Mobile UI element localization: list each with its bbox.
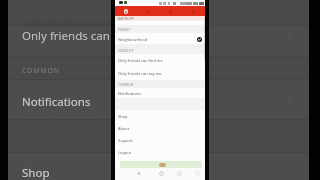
button[interactable]: People tab [159, 6, 182, 17]
staticText: COMMON [22, 66, 60, 76]
staticText: Neighbourhood [118, 37, 148, 42]
button[interactable]: Messages tab [182, 6, 205, 17]
button[interactable]: Back [135, 170, 142, 177]
button[interactable]: Only friends can find me [115, 54, 205, 67]
button[interactable]: Home tab [115, 6, 137, 17]
staticText: Only friends can find me [118, 58, 163, 63]
button[interactable]: Recents [176, 170, 183, 177]
staticText: PRIVACY [118, 28, 131, 32]
button[interactable]: Notifications [115, 88, 205, 98]
staticText: BACKUPS [118, 16, 134, 20]
staticText: Only friends can tag me [118, 71, 162, 76]
button[interactable]: Only friends can tag me [115, 67, 205, 80]
button[interactable]: Support [115, 134, 205, 146]
button[interactable]: Split screen [194, 170, 201, 177]
staticText: Shop [118, 114, 128, 119]
button[interactable]: Logout [115, 146, 205, 158]
button[interactable]: Notifications [22, 94, 91, 110]
button[interactable]: Home [158, 170, 165, 177]
staticText: Notifications [118, 91, 142, 96]
staticText: Control who can see your profile [22, 19, 121, 28]
button[interactable]: Only friends can tag me [22, 28, 151, 44]
button[interactable]: Search tab [137, 6, 159, 17]
button[interactable]: Shop [22, 165, 50, 180]
staticText: About [118, 126, 130, 131]
staticText: VISIBILITY [118, 49, 134, 53]
staticText: Support [118, 138, 133, 143]
staticText: Logout [118, 150, 131, 155]
button[interactable]: Neighbourhood [115, 33, 205, 45]
button[interactable]: Shop [115, 110, 205, 122]
staticText: COMMON [118, 83, 134, 87]
button[interactable]: About [115, 122, 205, 134]
